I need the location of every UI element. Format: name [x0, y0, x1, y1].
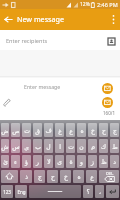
staticText: ح: [51, 173, 55, 180]
button[interactable]: ذ: [20, 170, 32, 183]
staticText: ى: [57, 158, 62, 165]
button[interactable]: ع: [86, 170, 97, 183]
staticText: ك: [101, 143, 106, 150]
button[interactable]: غ: [55, 123, 64, 137]
button[interactable]: ا: [55, 139, 64, 153]
staticText: ز: [91, 158, 94, 165]
button[interactable]: ق: [33, 123, 42, 137]
staticText: 12%: [80, 1, 90, 8]
staticText: ح: [102, 127, 106, 134]
staticText: خ: [64, 173, 68, 180]
staticText: ئ: [3, 158, 8, 165]
staticText: Eng: [17, 189, 26, 195]
button[interactable]: Back: [0, 9, 17, 30]
staticText: 2:46 PM: [97, 1, 118, 8]
button[interactable]: Attach file: [1, 97, 13, 109]
button[interactable]: ش: [1, 139, 9, 153]
staticText: ر: [36, 158, 39, 165]
staticText: ث: [24, 127, 30, 134]
button[interactable]: ع: [66, 123, 75, 137]
staticText: ب: [35, 143, 41, 150]
staticText: ؤ: [25, 158, 28, 165]
staticText: ف: [45, 127, 52, 134]
button[interactable]: Enter: [106, 185, 119, 198]
button[interactable]: More options: [106, 9, 120, 30]
staticText: ق: [35, 127, 40, 134]
button[interactable]: ة: [66, 155, 75, 168]
button[interactable]: Send message: [102, 83, 113, 94]
button[interactable]: خ: [88, 123, 97, 137]
staticText: ض: [1, 127, 9, 134]
staticText: ظ: [101, 158, 107, 165]
button[interactable]: ج: [110, 123, 119, 137]
staticText: ة: [69, 158, 73, 165]
staticText: DEL: [106, 171, 114, 176]
button[interactable]: ت: [66, 139, 75, 153]
button[interactable]: م: [88, 139, 97, 153]
button[interactable]: ب: [33, 139, 42, 153]
staticText: ء: [14, 158, 17, 165]
button[interactable]: ل: [44, 139, 53, 153]
staticText: ل: [46, 143, 51, 150]
button[interactable]: ف: [44, 123, 53, 137]
staticText: خ: [91, 127, 95, 134]
staticText: ع: [90, 173, 94, 180]
button[interactable]: ه: [73, 170, 84, 183]
staticText: ا: [59, 143, 61, 150]
staticText: ،: [99, 188, 101, 195]
button[interactable]: Send as MMS: [102, 97, 113, 108]
button[interactable]: ن: [77, 139, 86, 153]
staticText: ت: [68, 143, 74, 150]
button[interactable]: ج: [34, 170, 45, 183]
button[interactable]: ئ: [1, 155, 9, 168]
button[interactable]: ي: [22, 139, 31, 153]
staticText: لا: [47, 158, 51, 165]
staticText: ن: [79, 143, 84, 150]
button[interactable]: ؟: [83, 185, 93, 198]
button[interactable]: Shift: [1, 170, 18, 183]
button[interactable]: د: [110, 155, 119, 168]
button[interactable]: ،: [95, 185, 104, 198]
button[interactable]: ح: [47, 170, 58, 183]
staticText: ذ: [25, 173, 28, 180]
button[interactable]: 123: [1, 185, 13, 198]
staticText: 123: [3, 189, 11, 195]
button[interactable]: و: [77, 155, 86, 168]
button[interactable]: ه: [77, 123, 86, 137]
button[interactable]: ك: [99, 139, 108, 153]
button[interactable]: ح: [99, 123, 108, 137]
staticText: 160/1: [103, 110, 115, 116]
staticText: ي: [24, 143, 29, 150]
staticText: Enter message: [24, 83, 61, 90]
staticText: Enter recipients: [6, 37, 48, 45]
staticText: New message: [17, 14, 65, 24]
button[interactable]: ء: [11, 155, 20, 168]
button[interactable]: ر: [33, 155, 42, 168]
staticText: ط: [112, 143, 118, 150]
button[interactable]: ز: [88, 155, 97, 168]
button[interactable]: ض: [1, 123, 9, 137]
button[interactable]: ظ: [99, 155, 108, 168]
staticText: ش: [1, 143, 9, 150]
staticText: ج: [113, 127, 117, 134]
button[interactable]: Eng: [15, 185, 27, 198]
button[interactable]: Delete: [99, 170, 119, 183]
button[interactable]: Choose contact: [104, 33, 118, 47]
staticText: د: [113, 158, 116, 165]
button[interactable]: لا: [44, 155, 53, 168]
button[interactable]: س: [11, 139, 20, 153]
staticText: س: [12, 143, 20, 150]
button[interactable]: ى: [55, 155, 64, 168]
button[interactable]: ص: [11, 123, 20, 137]
button[interactable]: خ: [60, 170, 71, 183]
staticText: غ: [58, 127, 62, 134]
staticText: ه: [77, 173, 81, 180]
staticText: ع: [69, 127, 73, 134]
button[interactable]: ؤ: [22, 155, 31, 168]
staticText: ؟: [86, 188, 90, 195]
staticText: و: [80, 158, 83, 165]
staticText: ص: [12, 127, 20, 134]
button[interactable]: ط: [110, 139, 119, 153]
button[interactable]: Space: [29, 185, 81, 198]
button[interactable]: ث: [22, 123, 31, 137]
